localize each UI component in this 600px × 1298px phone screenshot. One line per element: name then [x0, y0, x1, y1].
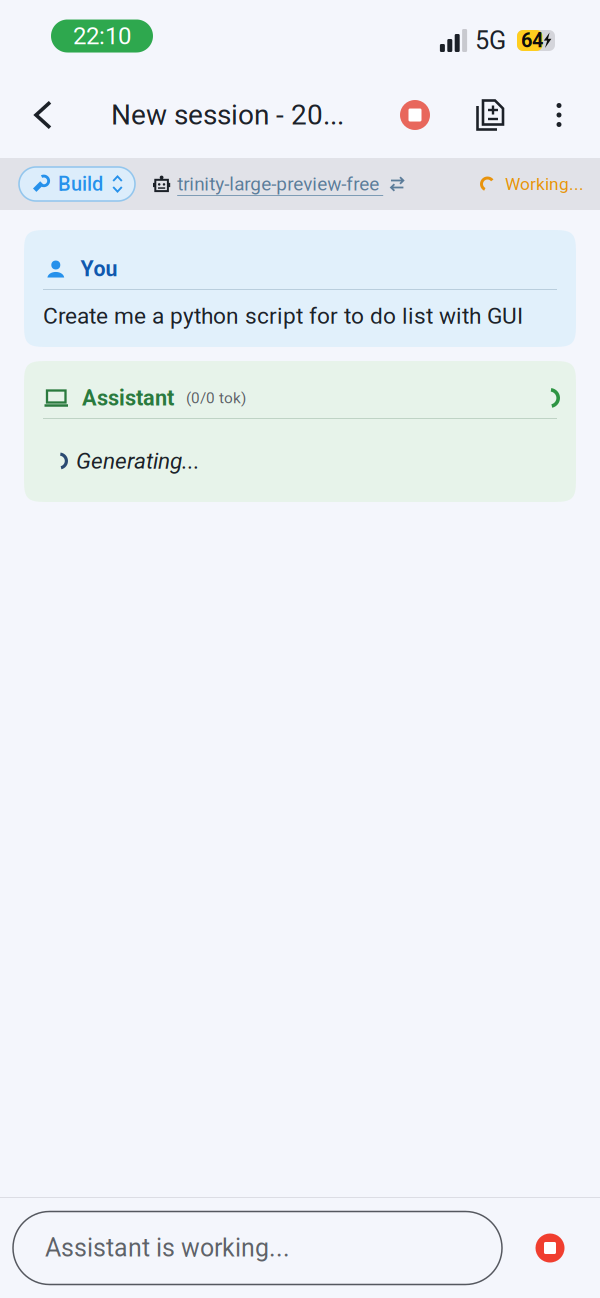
button[interactable]: Stop generating — [521, 1211, 579, 1284]
staticText: You — [81, 256, 118, 281]
button[interactable]: Build — [19, 167, 135, 201]
button[interactable]: trinity-large-preview-free — [153, 172, 404, 196]
staticText: Generating... — [76, 448, 200, 474]
staticText: Create me a python script for to do list… — [43, 303, 523, 329]
button[interactable]: Back — [0, 80, 86, 150]
staticText: 64 — [521, 29, 543, 52]
staticText: Assistant is working... — [45, 1233, 290, 1263]
button[interactable]: Assistant is working... — [13, 1211, 502, 1284]
staticText: Build — [58, 172, 103, 196]
staticText: Working... — [505, 174, 584, 194]
staticText: (0/0 tok) — [186, 389, 246, 407]
staticText: 5G — [475, 26, 506, 55]
staticText: trinity-large-preview-free — [177, 173, 379, 195]
button[interactable]: View diff — [445, 80, 536, 150]
button[interactable]: More options — [536, 80, 582, 150]
button[interactable]: Stop — [385, 80, 445, 150]
staticText: Assistant — [82, 385, 174, 411]
staticText: New session - 20... — [111, 99, 344, 131]
staticText: 22:10 — [73, 22, 131, 50]
